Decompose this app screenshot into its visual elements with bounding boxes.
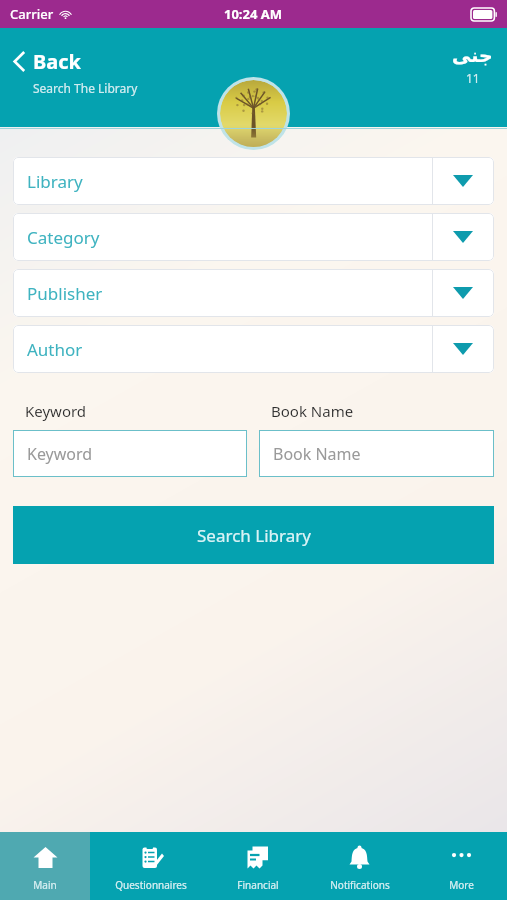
staticText: 11 (466, 70, 480, 86)
other: Main (33, 845, 58, 870)
staticText: Library (27, 170, 83, 193)
staticText: Financial (237, 878, 279, 892)
staticText: Carrier (10, 5, 54, 23)
staticText: Back (33, 48, 81, 75)
other: Notifications (347, 845, 372, 870)
other: Questionnaires (139, 845, 164, 870)
staticText: 10:24 AM (224, 5, 283, 23)
button[interactable]: Questionnaires (90, 832, 212, 900)
staticText: جنى (452, 44, 493, 66)
staticText: Category (27, 226, 100, 249)
staticText: Keyword (25, 401, 87, 421)
staticText: Publisher (27, 282, 103, 305)
button[interactable]: Profile avatar (220, 80, 287, 147)
button[interactable]: Back (14, 48, 138, 96)
button[interactable]: Notifications (303, 832, 416, 900)
button[interactable]: Main (0, 832, 90, 900)
staticText: Questionnaires (115, 878, 187, 892)
staticText: Book Name (273, 443, 361, 465)
staticText: Book Name (271, 401, 354, 421)
button[interactable]: Category (13, 213, 494, 261)
button[interactable]: Keyword (13, 430, 247, 477)
staticText: Author (27, 338, 83, 361)
staticText: Main (33, 878, 57, 892)
button[interactable]: More (416, 832, 507, 900)
button[interactable]: Search Library (13, 506, 494, 564)
button[interactable]: Book Name (259, 430, 494, 477)
staticText: Search Library (197, 524, 311, 547)
button[interactable]: Publisher (13, 269, 494, 317)
button[interactable]: Author (13, 325, 494, 373)
other: Financial (245, 845, 270, 870)
staticText: Search The Library (33, 80, 138, 96)
staticText: More (449, 878, 474, 892)
staticText: Keyword (27, 443, 93, 465)
other: More (449, 845, 474, 870)
staticText: Notifications (330, 878, 390, 892)
button[interactable]: Financial (212, 832, 303, 900)
button[interactable]: Library (13, 157, 494, 205)
